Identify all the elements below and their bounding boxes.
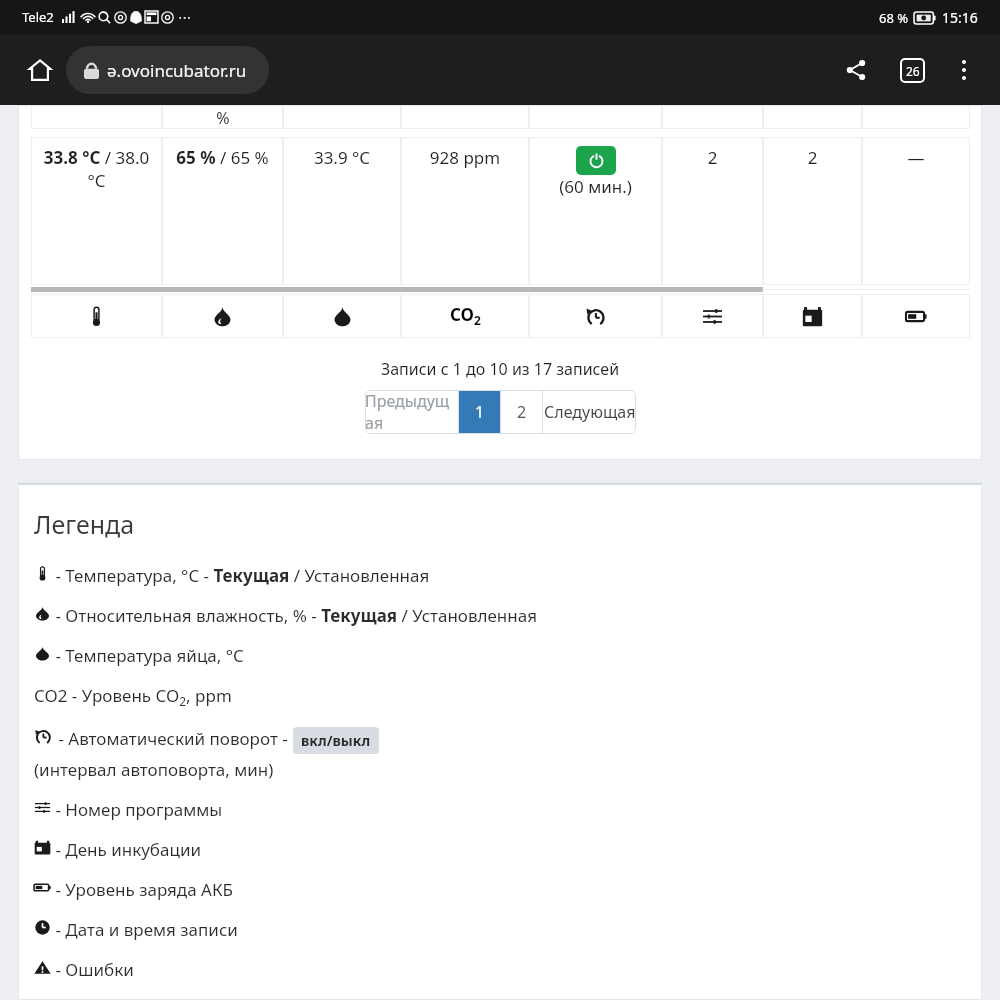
button[interactable]: Battery level	[862, 294, 970, 338]
other: Egg temperature	[34, 646, 51, 661]
other: Battery level	[34, 880, 51, 895]
other: Errors	[34, 960, 51, 975]
button[interactable]: Предыдущая	[365, 390, 458, 434]
staticText: (интервал автоповорта, мин)	[34, 758, 274, 781]
button[interactable]: ə.ovoincubator.ru	[66, 46, 269, 94]
staticText: 15:16	[942, 8, 978, 27]
staticText: - Температура яйца, °C	[51, 644, 244, 667]
staticText: ⋯	[178, 10, 191, 25]
staticText: CO2 - Уровень CO2, ppm	[34, 684, 232, 710]
button[interactable]: Temperature	[31, 294, 162, 338]
staticText: 26	[906, 63, 920, 79]
other: Record time	[34, 920, 51, 935]
button[interactable]: Humidity	[162, 294, 283, 338]
staticText: - Уровень заряда АКБ	[51, 878, 233, 901]
staticText: - Ошибки	[51, 958, 134, 981]
staticText: - Номер программы	[51, 798, 223, 821]
other: Program number	[34, 800, 51, 815]
button[interactable]: CO2	[401, 294, 529, 338]
button[interactable]: Tabs: 26	[890, 48, 934, 92]
staticText: CO2	[450, 303, 481, 329]
button[interactable]: Auto turn on	[576, 146, 616, 175]
staticText: - Дата и время записи	[51, 918, 238, 941]
staticText: Следующая	[544, 401, 636, 423]
staticText: %	[216, 107, 230, 129]
staticText: 2	[665, 146, 760, 169]
staticText: 2	[517, 401, 527, 423]
staticText: 68 %	[879, 9, 909, 27]
button[interactable]: 1	[459, 390, 500, 434]
button[interactable]: Share	[834, 48, 878, 92]
button[interactable]: Program number	[662, 294, 763, 338]
button[interactable]: Home	[18, 48, 62, 92]
staticText: - День инкубации	[51, 838, 201, 861]
other: Auto turn	[34, 728, 52, 745]
button[interactable]: Auto turn	[529, 294, 662, 338]
other: Humidity	[34, 606, 51, 621]
staticText: 33.9 °C	[286, 146, 398, 169]
button[interactable]: 2	[501, 390, 542, 434]
other: Incubation day	[34, 840, 51, 855]
button[interactable]: Incubation day	[763, 294, 862, 338]
staticText: 65 % / 65 %	[165, 146, 280, 169]
staticText: (60 мин.)	[532, 175, 659, 198]
button[interactable]: Следующая	[543, 390, 636, 434]
staticText: 2	[766, 146, 859, 169]
button[interactable]: More options	[942, 48, 986, 92]
staticText: —	[865, 146, 967, 169]
staticText: - Автоматический поворот -	[54, 727, 293, 750]
staticText: вкл/выкл	[301, 731, 371, 750]
staticText: Легенда	[34, 507, 135, 541]
other: Temperature	[34, 566, 51, 581]
button[interactable]: Egg temperature	[283, 294, 401, 338]
staticText: 33.8 °C / 38.0 °C	[34, 146, 159, 192]
staticText: 928 ppm	[404, 146, 526, 169]
staticText: Записи с 1 до 10 из 17 записей	[18, 358, 982, 380]
staticText: ə.ovoincubator.ru	[107, 59, 247, 82]
staticText: - Относительная влажность, % - Текущая /…	[51, 604, 538, 627]
staticText: - Температура, °C - Текущая / Установлен…	[51, 564, 430, 587]
staticText: 1	[475, 401, 485, 423]
staticText: Предыдущая	[365, 390, 458, 434]
staticText: Tele2	[22, 8, 54, 26]
